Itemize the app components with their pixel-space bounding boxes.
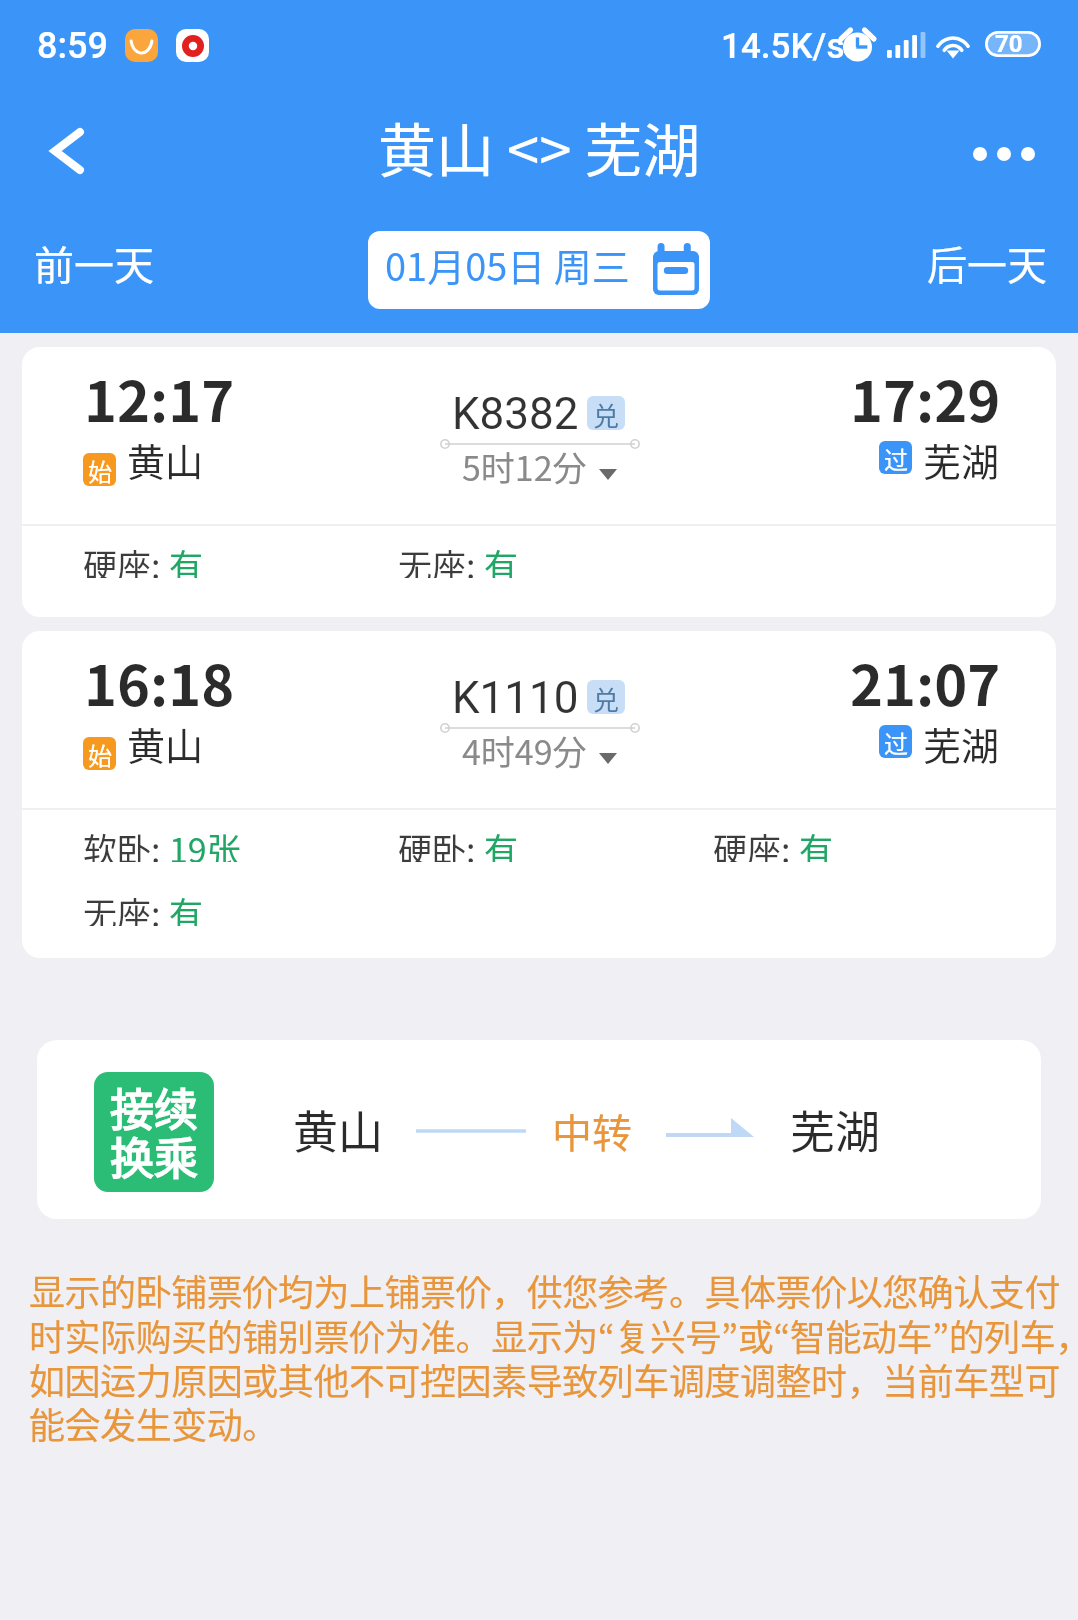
staticText: 19张 bbox=[169, 824, 241, 862]
staticText: 始 bbox=[88, 737, 112, 770]
button[interactable]: 前一天 bbox=[0, 234, 154, 292]
staticText: 过 bbox=[884, 725, 908, 758]
staticText: 有 bbox=[799, 824, 833, 862]
staticText: 黄山 bbox=[293, 1097, 384, 1162]
staticText: 接续 换乘 bbox=[110, 1075, 198, 1188]
staticText: 有 bbox=[169, 540, 203, 578]
staticText: 芜湖 bbox=[923, 432, 1000, 487]
button[interactable]: 16:18 bbox=[22, 631, 1056, 958]
staticText: 12:17 bbox=[84, 357, 235, 438]
staticText: 硬卧: bbox=[398, 824, 484, 862]
button[interactable]: 01月05日 周三 bbox=[368, 231, 710, 309]
staticText: 有 bbox=[169, 888, 203, 926]
staticText: 过 bbox=[884, 441, 908, 474]
button[interactable]: Back bbox=[0, 90, 128, 207]
button[interactable]: 12:17 bbox=[22, 347, 1056, 617]
staticText: 硬座: bbox=[713, 824, 799, 862]
staticText: 70 bbox=[995, 30, 1023, 56]
staticText: 兑 bbox=[593, 396, 620, 430]
staticText: 21:07 bbox=[850, 641, 1001, 722]
button[interactable]: 后一天 bbox=[927, 234, 1078, 292]
staticText: 黄山 bbox=[127, 716, 204, 771]
button[interactable]: 接续 换乘 bbox=[37, 1040, 1041, 1219]
staticText: 有 bbox=[484, 540, 518, 578]
staticText: 兑 bbox=[593, 680, 620, 714]
staticText: K8382 bbox=[452, 388, 579, 440]
staticText: 硬座: bbox=[83, 540, 169, 578]
staticText: K1110 bbox=[452, 672, 579, 724]
staticText: 显示的卧铺票价均为上铺票价，供您参考。具体票价以您确认支付 时实际购买的铺别票价… bbox=[29, 1264, 1078, 1449]
staticText: 01月05日 周三 bbox=[385, 237, 630, 292]
staticText: 无座: bbox=[398, 540, 484, 578]
staticText: 14.5K/s bbox=[721, 26, 845, 67]
button[interactable]: More options bbox=[946, 90, 1078, 207]
staticText: 16:18 bbox=[84, 641, 235, 722]
staticText: 8:59 bbox=[37, 25, 108, 67]
staticText: 中转 bbox=[552, 1102, 632, 1160]
staticText: 5时12分 bbox=[462, 442, 587, 491]
staticText: 芜湖 bbox=[923, 716, 1000, 771]
staticText: 芜湖 bbox=[790, 1097, 881, 1162]
staticText: 4时49分 bbox=[462, 726, 587, 775]
staticText: 17:29 bbox=[850, 357, 1001, 438]
staticText: 黄山 bbox=[127, 432, 204, 487]
staticText: 始 bbox=[88, 453, 112, 486]
staticText: 黄山 <> 芜湖 bbox=[378, 105, 701, 189]
staticText: 无座: bbox=[83, 888, 169, 926]
staticText: 有 bbox=[484, 824, 518, 862]
staticText: 软卧: bbox=[83, 824, 169, 862]
